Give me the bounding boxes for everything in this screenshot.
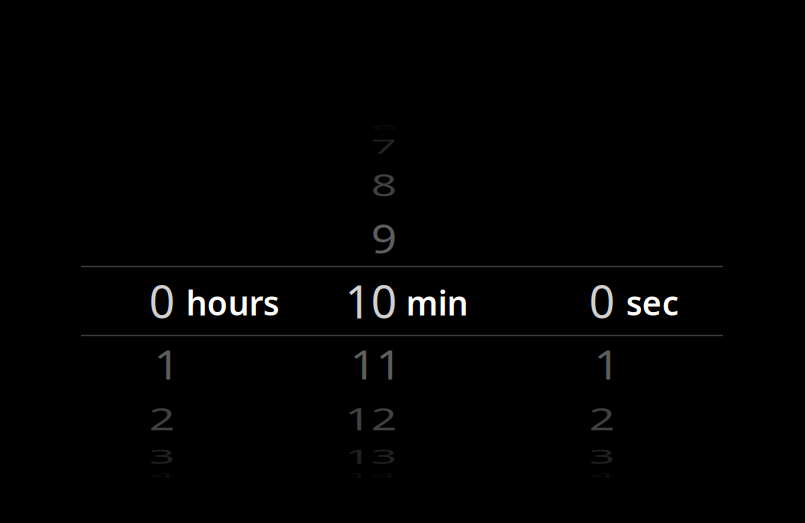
staticText: 8 bbox=[371, 154, 397, 214]
staticText: 3 bbox=[149, 426, 175, 486]
staticText: 7 bbox=[371, 116, 397, 176]
staticText: 4 bbox=[149, 445, 175, 505]
staticText: 3 bbox=[589, 426, 615, 486]
staticText: 6 bbox=[371, 97, 397, 157]
staticText: 0 bbox=[589, 271, 615, 331]
staticText: 11 bbox=[350, 334, 402, 394]
staticText: 13 bbox=[345, 426, 397, 486]
staticText: 14 bbox=[345, 445, 397, 505]
staticText: 4 bbox=[589, 445, 615, 505]
staticText: 2 bbox=[589, 388, 615, 448]
staticText: hours bbox=[186, 280, 279, 325]
staticText: 12 bbox=[345, 388, 397, 448]
staticText: 2 bbox=[149, 388, 175, 448]
button[interactable]: 10 bbox=[295, 266, 509, 335]
staticText: sec bbox=[626, 280, 679, 325]
staticText: 10 bbox=[345, 271, 397, 331]
staticText: 1 bbox=[154, 334, 180, 394]
staticText: min bbox=[406, 280, 468, 325]
staticText: 0 bbox=[149, 271, 175, 331]
button[interactable]: 0 bbox=[509, 266, 723, 335]
staticText: 9 bbox=[371, 208, 397, 268]
staticText: 1 bbox=[594, 334, 620, 394]
button[interactable]: 0 bbox=[81, 266, 295, 335]
